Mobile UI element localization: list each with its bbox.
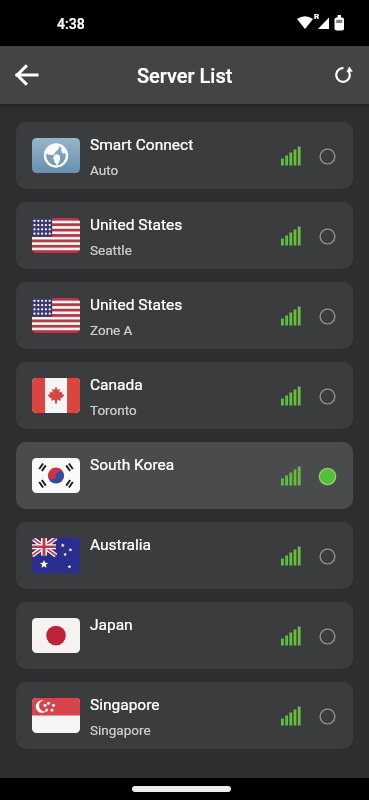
button[interactable]: Singapore bbox=[16, 682, 353, 749]
staticText: Seattle bbox=[90, 242, 132, 258]
button[interactable] bbox=[6, 54, 48, 96]
button[interactable]: South Korea bbox=[16, 442, 353, 509]
staticText: Canada bbox=[90, 376, 143, 394]
button[interactable]: Smart Connect bbox=[16, 122, 353, 189]
staticText: Australia bbox=[90, 536, 151, 554]
staticText: South Korea bbox=[90, 456, 175, 474]
button[interactable]: United States bbox=[16, 282, 353, 349]
button[interactable]: United States bbox=[16, 202, 353, 269]
button[interactable]: Canada bbox=[16, 362, 353, 429]
staticText: United States bbox=[90, 216, 183, 234]
button[interactable] bbox=[323, 55, 363, 95]
staticText: Auto bbox=[90, 162, 119, 178]
staticText: Server List bbox=[137, 64, 233, 87]
staticText: Singapore bbox=[90, 722, 151, 738]
staticText: Smart Connect bbox=[90, 136, 194, 154]
staticText: United States bbox=[90, 296, 183, 314]
staticText: Toronto bbox=[90, 402, 137, 418]
staticText: Singapore bbox=[90, 696, 160, 714]
staticText: 4:38 bbox=[57, 16, 85, 32]
staticText: Zone A bbox=[90, 322, 133, 338]
staticText: Japan bbox=[90, 616, 133, 634]
button[interactable]: Australia bbox=[16, 522, 353, 589]
staticText: R bbox=[314, 12, 320, 21]
button[interactable]: Japan bbox=[16, 602, 353, 669]
